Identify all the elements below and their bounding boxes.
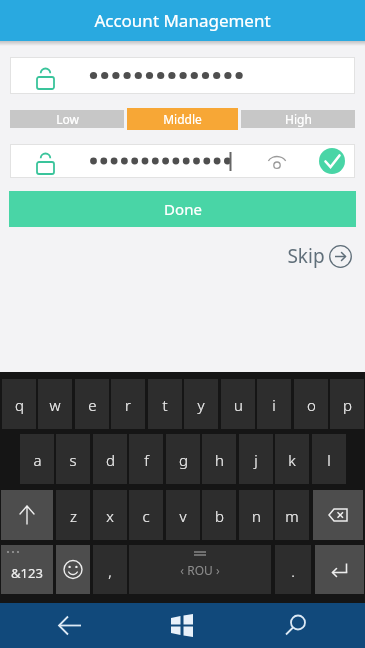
button[interactable]: s	[56, 434, 90, 484]
button[interactable]: l	[312, 434, 346, 484]
button[interactable]: g	[166, 434, 200, 484]
staticText: Skip	[287, 243, 325, 269]
staticText: g	[179, 450, 188, 470]
staticText: n	[252, 506, 261, 526]
button[interactable]: q	[2, 379, 36, 429]
staticText: High	[285, 111, 312, 127]
button[interactable]: u	[221, 379, 255, 429]
button[interactable]: b	[202, 490, 236, 540]
staticText: z	[70, 506, 77, 526]
button[interactable]: ,	[93, 545, 127, 594]
button[interactable]: Skip	[287, 243, 352, 269]
button[interactable]: p	[330, 379, 364, 429]
button[interactable]: h	[202, 434, 236, 484]
staticText: Account Management	[94, 9, 271, 32]
staticText: o	[307, 395, 316, 415]
staticText: &123	[11, 564, 43, 582]
button[interactable]	[56, 545, 90, 594]
staticText: j	[254, 450, 258, 470]
staticText: e	[88, 395, 97, 415]
staticText: m	[285, 506, 299, 526]
button[interactable]: d	[93, 434, 127, 484]
staticText: k	[288, 450, 296, 470]
button[interactable]: w	[38, 379, 72, 429]
staticText: t	[162, 395, 168, 415]
button[interactable]	[313, 490, 363, 540]
staticText: x	[106, 506, 114, 526]
staticText: d	[106, 450, 115, 470]
staticText: b	[215, 506, 224, 526]
staticText: y	[197, 395, 205, 415]
button[interactable]: Done	[9, 191, 356, 227]
button[interactable]: z	[56, 490, 90, 540]
staticText: r	[125, 395, 131, 415]
staticText: Middle	[163, 111, 202, 127]
button[interactable]: r	[111, 379, 145, 429]
staticText: p	[343, 395, 352, 415]
staticText: l	[327, 450, 331, 470]
staticText: c	[142, 506, 150, 526]
button[interactable]: i	[257, 379, 291, 429]
staticText: i	[272, 395, 276, 415]
button[interactable]: o	[294, 379, 328, 429]
button[interactable]	[46, 603, 94, 648]
staticText: u	[234, 395, 243, 415]
button[interactable]	[1, 490, 53, 540]
button[interactable]: n	[239, 490, 273, 540]
staticText: q	[15, 395, 24, 415]
staticText: a	[33, 450, 42, 470]
button[interactable]: f	[129, 434, 163, 484]
staticText: s	[69, 450, 77, 470]
staticText: ‹ ROU ›	[180, 562, 220, 578]
staticText: f	[144, 450, 149, 470]
button[interactable]: c	[129, 490, 163, 540]
button[interactable]: m	[275, 490, 309, 540]
button[interactable]: t	[148, 379, 182, 429]
staticText: w	[49, 395, 61, 415]
button[interactable]: v	[166, 490, 200, 540]
button[interactable]: e	[75, 379, 109, 429]
button[interactable]: x	[93, 490, 127, 540]
staticText: Done	[164, 199, 202, 219]
button[interactable]: j	[239, 434, 273, 484]
button[interactable]: ‹ ROU ›	[129, 545, 271, 594]
button[interactable]	[271, 603, 319, 648]
staticText: Low	[56, 111, 79, 127]
staticText: h	[215, 450, 224, 470]
button[interactable]	[158, 603, 206, 648]
staticText: ,	[108, 561, 112, 581]
button[interactable]: &123	[1, 545, 53, 594]
button[interactable]: k	[275, 434, 309, 484]
button[interactable]: y	[184, 379, 218, 429]
staticText: .	[291, 561, 295, 581]
button[interactable]	[315, 545, 364, 594]
staticText: v	[179, 506, 187, 526]
button[interactable]: a	[20, 434, 54, 484]
button[interactable]: .	[275, 545, 311, 594]
